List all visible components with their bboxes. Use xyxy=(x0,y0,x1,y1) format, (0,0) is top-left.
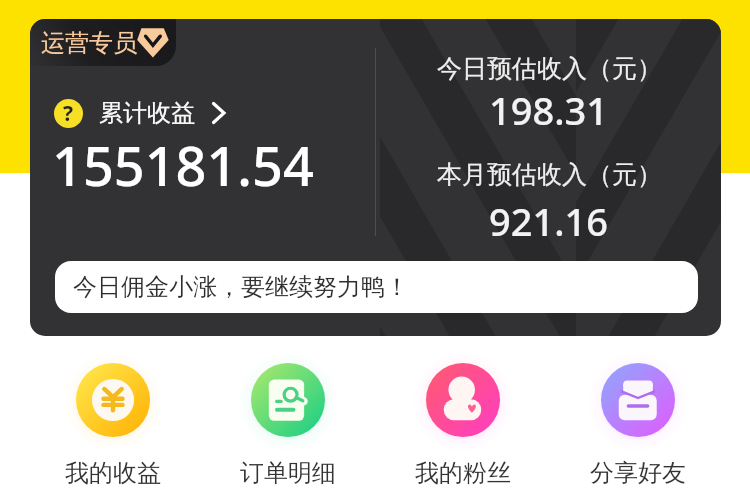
staticText: 订单明细 xyxy=(240,458,336,488)
staticText: 今日预估收入（元） xyxy=(437,53,662,84)
staticText: 155181.54 xyxy=(52,128,314,202)
staticText: 921.16 xyxy=(489,195,609,247)
staticText: 分享好友 xyxy=(590,458,686,488)
staticText: 今日佣金小涨，要继续努力鸭！ xyxy=(73,272,409,302)
button[interactable]: 我的粉丝 xyxy=(375,350,550,488)
button[interactable]: 我的收益 xyxy=(25,350,200,488)
staticText: 我的收益 xyxy=(65,458,161,488)
button[interactable]: 运营专员 xyxy=(30,19,176,66)
staticText: 运营专员 xyxy=(41,28,137,58)
staticText: 198.31 xyxy=(489,84,609,136)
button[interactable]: 分享好友 xyxy=(550,350,725,488)
staticText: ? xyxy=(63,99,74,128)
staticText: 我的粉丝 xyxy=(415,458,511,488)
staticText: 本月预估收入（元） xyxy=(437,159,662,190)
staticText: 累计收益 xyxy=(99,98,195,128)
button[interactable]: 订单明细 xyxy=(200,350,375,488)
button[interactable]: 今日佣金小涨，要继续努力鸭！ xyxy=(55,261,698,313)
button[interactable]: ? xyxy=(54,96,226,130)
